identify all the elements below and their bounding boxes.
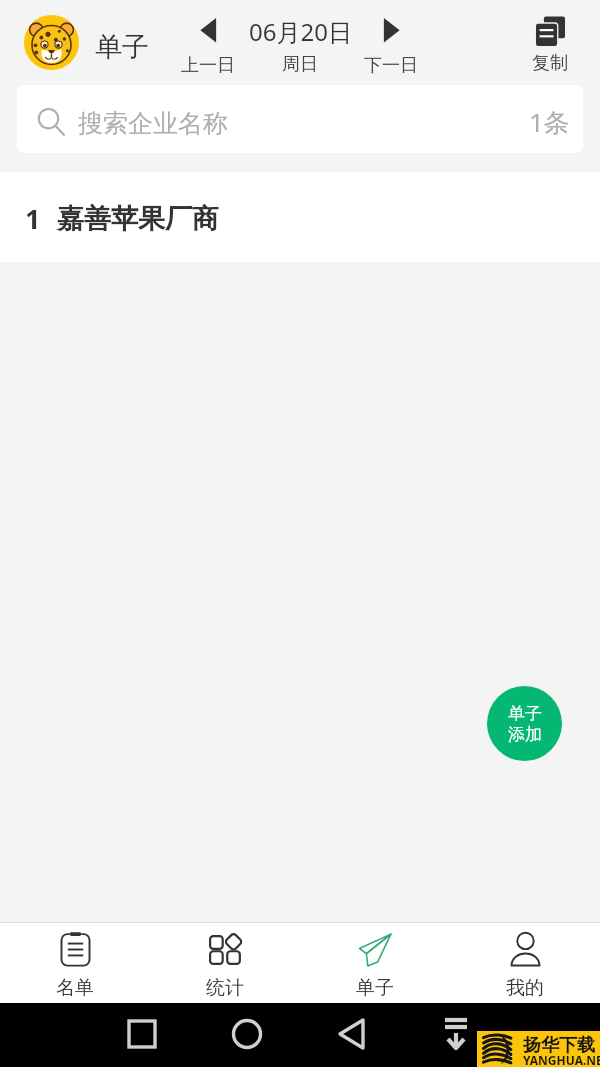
staticText: 单子 [95,30,149,64]
button[interactable]: Profile [24,15,79,70]
staticText: 1条 [529,104,570,140]
button[interactable]: 名单 [0,926,150,1000]
button[interactable]: Back [322,1011,382,1059]
staticText: 扬华下载 [523,1034,595,1057]
staticText: 1 [25,200,41,237]
button[interactable]: 单子 [300,926,450,1000]
staticText: 复制 [532,52,568,75]
button[interactable]: Home [217,1011,277,1059]
staticText: 周日 [282,53,318,76]
staticText: 上一日 [181,54,235,77]
button[interactable]: 我的 [450,926,600,1000]
button[interactable]: 搜索企业名称 [17,85,583,153]
button[interactable]: Hide navigation bar [432,1011,482,1059]
button[interactable]: Next day [355,15,427,77]
button[interactable]: Previous day [172,15,244,77]
button[interactable]: 1 [0,172,600,262]
staticText: 名单 [56,976,94,1000]
button[interactable]: 单子 [487,686,562,761]
button[interactable]: 统计 [150,926,300,1000]
staticText: 添加 [508,724,542,745]
staticText: 我的 [506,976,544,1000]
button[interactable]: 复制 [516,14,584,75]
button[interactable]: Recent apps [112,1011,172,1059]
staticText: 嘉善苹果厂商 [57,202,219,236]
staticText: 06月20日 [249,15,352,48]
staticText: 单子 [356,976,394,1000]
staticText: 下一日 [364,54,418,77]
staticText: YANGHUA.NET [523,1052,600,1067]
staticText: 统计 [206,976,244,1000]
staticText: 单子 [508,703,542,724]
staticText: 搜索企业名称 [78,108,228,139]
